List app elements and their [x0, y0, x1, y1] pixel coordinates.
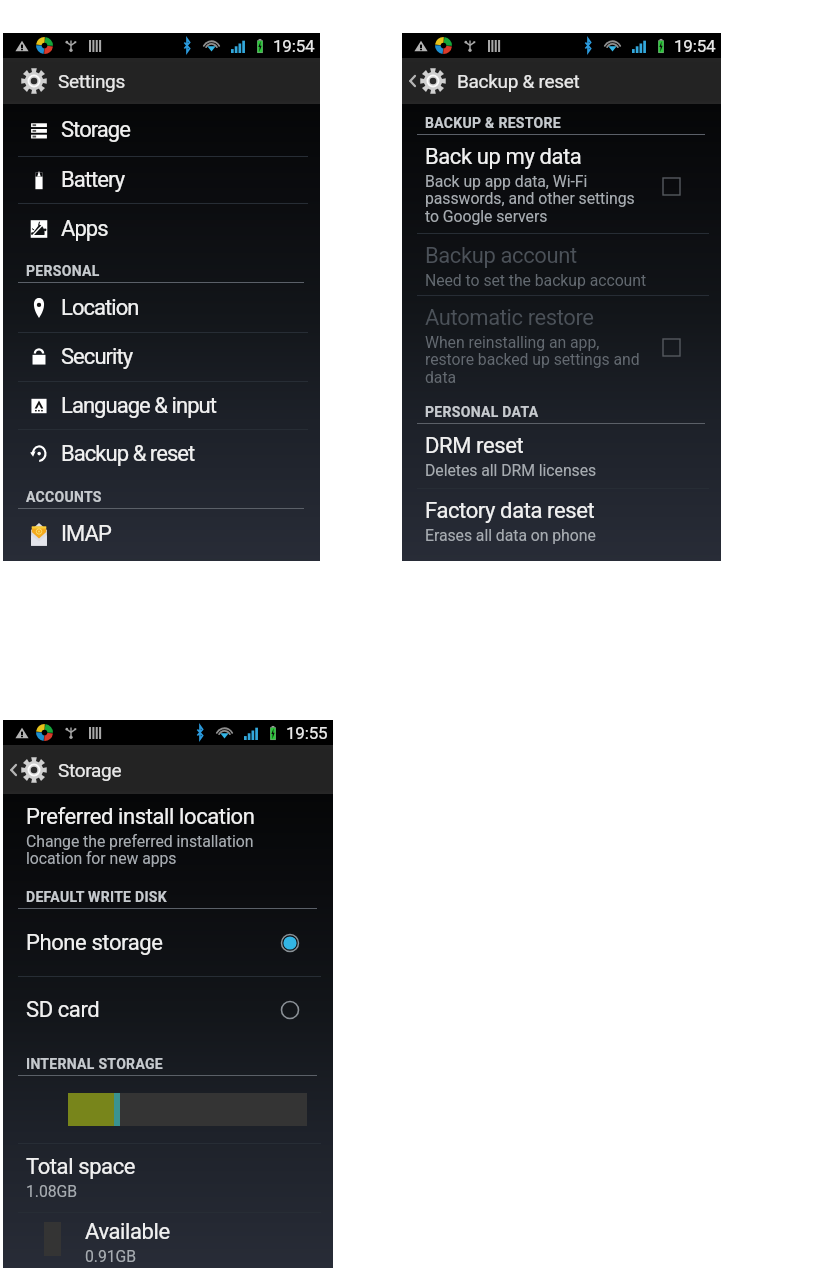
staticText: Phone storage: [26, 930, 163, 956]
staticText: Apps: [61, 216, 108, 242]
button[interactable]: Language & input: [3, 382, 320, 429]
staticText: Deletes all DRM licenses: [425, 461, 597, 480]
button[interactable]: Backup account: [402, 234, 721, 295]
button[interactable]: Automatic restore: [402, 296, 721, 392]
button[interactable]: Settings: [3, 58, 320, 104]
staticText: Erases all data on phone: [425, 526, 596, 545]
staticText: Preferred install location: [26, 804, 255, 830]
staticText: Storage: [61, 117, 130, 143]
staticText: 0.91GB: [85, 1247, 137, 1266]
staticText: 19:54: [674, 36, 716, 56]
button[interactable]: IMAP: [3, 509, 320, 559]
staticText: Back up my data: [425, 144, 582, 170]
button[interactable]: Toggle Automatic restore: [663, 339, 680, 356]
button[interactable]: Apps: [3, 204, 320, 253]
button[interactable]: Security: [3, 333, 320, 381]
staticText: 19:55: [286, 723, 328, 743]
staticText: Factory data reset: [425, 498, 595, 524]
staticText: Security: [61, 344, 133, 370]
staticText: Settings: [58, 70, 125, 92]
button[interactable]: SD card: [3, 977, 333, 1043]
staticText: Change the preferred installation locati…: [26, 832, 254, 868]
staticText: Backup & reset: [457, 70, 580, 92]
button[interactable]: Preferred install location: [3, 794, 333, 871]
button[interactable]: Factory data reset: [402, 489, 721, 556]
staticText: 1.08GB: [26, 1182, 78, 1201]
staticText: DRM reset: [425, 433, 524, 459]
staticText: INTERNAL STORAGE: [26, 1056, 163, 1072]
staticText: Automatic restore: [425, 305, 594, 331]
staticText: 19:54: [273, 36, 315, 56]
button[interactable]: Navigate up: [8, 759, 19, 781]
staticText: IMAP: [61, 521, 111, 547]
button[interactable]: DRM reset: [402, 424, 721, 488]
button[interactable]: Back up my data: [402, 135, 721, 233]
staticText: PERSONAL DATA: [425, 404, 539, 420]
staticText: SD card: [26, 997, 100, 1023]
staticText: Backup account: [425, 243, 577, 269]
staticText: Available: [85, 1219, 170, 1245]
staticText: When reinstalling an app, restore backed…: [425, 333, 640, 387]
button[interactable]: Location: [3, 283, 320, 332]
button[interactable]: Backup & reset: [3, 430, 320, 478]
staticText: Battery: [61, 167, 125, 193]
staticText: DEFAULT WRITE DISK: [26, 889, 167, 905]
button[interactable]: Navigate up: [402, 58, 721, 104]
staticText: BACKUP & RESTORE: [425, 115, 561, 131]
staticText: Back up app data, Wi-Fi passwords, and o…: [425, 172, 635, 226]
button[interactable]: Battery: [3, 157, 320, 203]
staticText: Need to set the backup account: [425, 271, 647, 290]
staticText: Language & input: [61, 393, 217, 419]
button[interactable]: Navigate up: [407, 70, 418, 92]
button[interactable]: Navigate up: [3, 745, 333, 794]
staticText: Total space: [26, 1154, 136, 1180]
button[interactable]: Toggle Back up my data: [663, 178, 680, 195]
button[interactable]: Storage: [3, 104, 320, 156]
button[interactable]: Total space: [3, 1144, 333, 1212]
staticText: Location: [61, 295, 139, 321]
staticText: Backup & reset: [61, 441, 195, 467]
button[interactable]: Phone storage: [3, 909, 333, 976]
staticText: PERSONAL: [26, 263, 100, 279]
staticText: ACCOUNTS: [26, 489, 102, 505]
staticText: Storage: [58, 759, 122, 781]
button[interactable]: Available: [3, 1213, 333, 1268]
